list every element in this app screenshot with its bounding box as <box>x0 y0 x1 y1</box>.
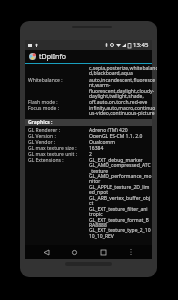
staticText: GL_ARB_vertex_buffer_obj <box>89 195 151 202</box>
button[interactable]: tDpiInfo <box>25 50 152 63</box>
staticText: us-video,continuous-picture <box>89 110 155 117</box>
button[interactable]: Recents <box>96 245 110 259</box>
staticText: 16384 <box>89 145 104 150</box>
staticText: 2 <box>89 151 92 156</box>
button[interactable]: GL Version : <box>25 133 152 138</box>
staticText: 13:45 <box>133 41 149 49</box>
staticText: GL Renderer : <box>28 127 60 132</box>
staticText: GL_EXT_texture_format_B <box>89 217 149 224</box>
staticText: GL_EXT_texture_filter_ani <box>89 206 148 213</box>
staticText: GL_EXT_debug_marker <box>89 157 143 164</box>
button[interactable]: GL Vendor : <box>25 139 152 144</box>
staticText: GL_APPLE_texture_2D_lim <box>89 184 150 191</box>
staticText: tropic <box>89 211 103 218</box>
staticText: 10_10_REV <box>89 233 114 240</box>
staticText: d,blackboard,aqua <box>89 70 133 77</box>
staticText: Qualcomm <box>89 139 115 144</box>
button[interactable]: GL max texture size : <box>25 145 152 150</box>
button[interactable]: Menu <box>124 245 138 259</box>
staticText: GL Vendor : <box>28 139 56 144</box>
button[interactable]: Flash mode : <box>25 99 152 104</box>
staticText: GL_AMD_compressed_ATC <box>89 162 151 169</box>
staticText: Whitebalance : <box>28 77 63 84</box>
staticText: Focus mode : <box>28 105 60 112</box>
staticText: RA8888 <box>89 222 107 229</box>
staticText: ed_npot <box>89 189 109 196</box>
staticText: off,auto,on,torch,red-eye <box>89 99 148 104</box>
staticText: GL_AMD_performance_mo <box>89 173 152 180</box>
staticText: c,sepia,posterize,whitebalance <box>89 65 157 72</box>
button[interactable]: GL max texture unit : <box>25 151 152 156</box>
staticText: GL Extensions : <box>28 157 64 164</box>
staticText: auto,incandescent,fluoresce <box>89 77 156 84</box>
staticText: Adreno (TM) 420 <box>89 127 128 132</box>
button[interactable]: c,sepia,posterize,whitebalance <box>25 65 152 76</box>
staticText: Flash mode : <box>28 99 58 104</box>
staticText: GL_EXT_texture_type_2_10 <box>89 227 151 234</box>
staticText: ct <box>89 200 94 207</box>
staticText: GL max texture unit : <box>28 151 78 156</box>
staticText: nt,warm- <box>89 82 111 89</box>
button[interactable]: GL Extensions : <box>25 157 152 239</box>
staticText: Graphics : <box>28 119 53 126</box>
button[interactable]: GL Renderer : <box>25 127 152 132</box>
staticText: infinity,auto,macro,continuo <box>89 105 156 112</box>
button[interactable]: Whitebalance : <box>25 77 152 99</box>
staticText: OpenGL ES-CM 1.1, 2.0 <box>89 133 143 138</box>
button[interactable]: Graphics : <box>25 119 152 126</box>
staticText: nitor <box>89 178 101 185</box>
staticText: daylight,twilight,shade, <box>89 93 144 100</box>
button[interactable]: Back <box>39 245 53 259</box>
staticText: GL max texture size : <box>28 145 77 150</box>
staticText: fluorescent,daylight,cloudy- <box>89 88 155 95</box>
button[interactable]: Home <box>67 245 81 259</box>
button[interactable]: Focus mode : <box>25 105 152 116</box>
staticText: GL Version : <box>28 133 56 138</box>
staticText: _texture <box>89 168 109 175</box>
staticText: tDpiInfo <box>39 52 67 62</box>
